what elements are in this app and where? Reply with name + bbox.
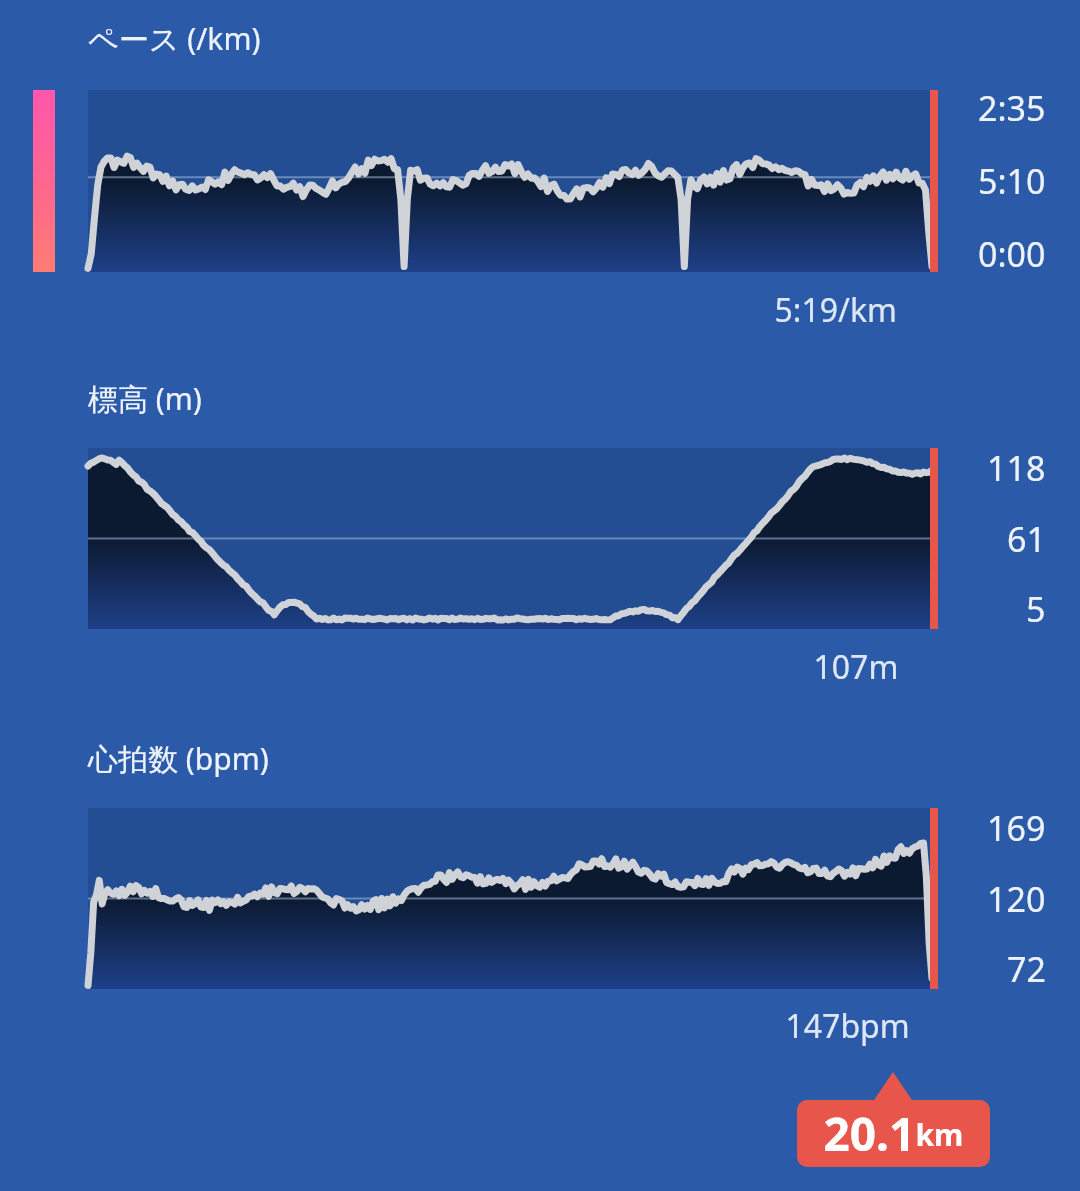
button[interactable]: Activity charts <box>0 0 1080 1191</box>
